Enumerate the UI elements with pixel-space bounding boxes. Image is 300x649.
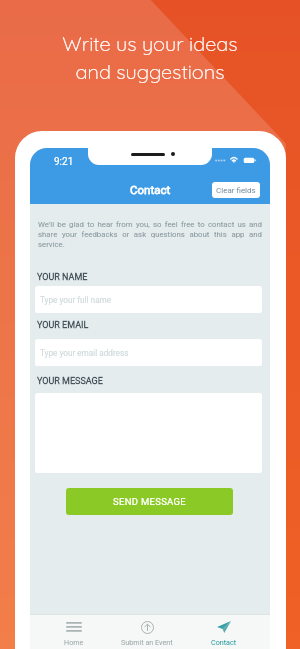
button[interactable]: Type your full name [35, 286, 262, 313]
staticText: YOUR MESSAGE [37, 376, 103, 387]
button[interactable]: Home [60, 615, 88, 646]
staticText: Submit an Event [121, 638, 173, 646]
button[interactable]: SEND MESSAGE [66, 488, 233, 515]
staticText: 9:21 [54, 156, 74, 168]
staticText: YOUR EMAIL [37, 320, 89, 331]
button[interactable]: Contact [207, 615, 241, 646]
staticText: SEND MESSAGE [113, 496, 186, 507]
staticText: YOUR NAME [37, 272, 88, 283]
staticText: Type your full name [40, 295, 112, 305]
staticText: Contact [130, 183, 171, 196]
staticText: We'll be glad to hear from you, so feel … [38, 220, 262, 249]
button[interactable]: Submit an Event [117, 615, 177, 646]
button[interactable]: Type your email address [35, 339, 262, 366]
staticText: Home [64, 638, 84, 646]
staticText: Contact [211, 638, 237, 646]
staticText: Write us your ideas and suggestions [62, 31, 238, 84]
staticText: Type your email address [40, 348, 129, 358]
button[interactable]: Clear fields [212, 182, 260, 198]
staticText: Clear fields [216, 186, 256, 195]
